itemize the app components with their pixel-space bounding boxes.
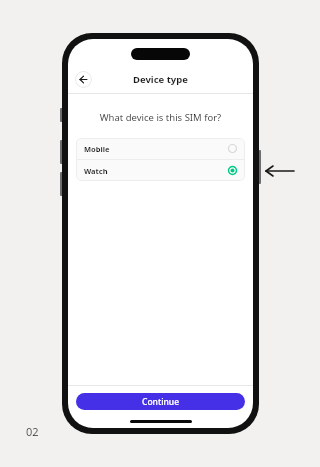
button[interactable]: Back xyxy=(75,71,92,88)
button[interactable]: Mobile xyxy=(76,138,245,159)
staticText: What device is this SIM for? xyxy=(80,111,241,124)
button[interactable]: Watch xyxy=(76,160,245,181)
staticText: Watch xyxy=(84,166,108,176)
staticText: 02 xyxy=(26,424,39,439)
staticText: Device type xyxy=(133,73,188,86)
staticText: Continue xyxy=(142,396,180,408)
button[interactable]: Continue xyxy=(76,393,245,410)
staticText: Mobile xyxy=(84,144,110,154)
